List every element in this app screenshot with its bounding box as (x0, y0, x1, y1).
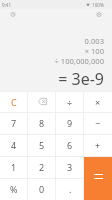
button[interactable]: Equals (84, 157, 112, 200)
staticText: . (69, 183, 72, 195)
button[interactable] (84, 178, 112, 200)
button[interactable]: 4 (0, 134, 28, 156)
button[interactable]: . (56, 178, 84, 200)
staticText: 1 (11, 161, 17, 173)
button[interactable]: Backspace (28, 91, 56, 112)
staticText: 2 (39, 161, 45, 173)
staticText: = 3e-9 (58, 68, 104, 90)
staticText: C (11, 96, 17, 108)
button[interactable]: 8 (28, 112, 56, 134)
staticText: 8 (39, 117, 45, 129)
button[interactable]: 7 (0, 112, 28, 134)
staticText: 6 (67, 139, 73, 151)
staticText: 0.003 (84, 36, 104, 46)
button[interactable]: ÷ (56, 91, 84, 112)
staticText: % (10, 183, 18, 195)
staticText: + (95, 139, 101, 151)
staticText: − (95, 117, 101, 129)
staticText: × 100 (84, 46, 104, 56)
button[interactable]: Settings (91, 7, 106, 22)
button[interactable]: 1 (0, 156, 28, 178)
staticText: 5 (39, 139, 45, 151)
button[interactable]: × (84, 91, 112, 112)
staticText: 100% (92, 2, 104, 8)
button[interactable]: 9 (56, 112, 84, 134)
button[interactable]: − (84, 112, 112, 134)
staticText: ÷ (67, 96, 73, 108)
staticText: × (95, 96, 101, 108)
staticText: 3 (67, 161, 73, 173)
button[interactable]: 0 (28, 178, 56, 200)
button[interactable]: C (0, 91, 28, 112)
staticText: 0 (39, 183, 45, 195)
staticText: 7 (11, 117, 17, 129)
button[interactable]: % (0, 178, 28, 200)
staticText: 4 (11, 139, 17, 151)
button[interactable] (84, 156, 112, 178)
staticText: 9 (67, 117, 73, 129)
button[interactable]: 2 (28, 156, 56, 178)
button[interactable]: 6 (56, 134, 84, 156)
other: Backspace (28, 91, 56, 112)
staticText: ÷ 100,000,000 (54, 56, 104, 66)
button[interactable]: + (84, 134, 112, 156)
button[interactable]: 5 (28, 134, 56, 156)
staticText: 9:41 (2, 2, 12, 8)
button[interactable]: 3 (56, 156, 84, 178)
button[interactable]: History (5, 7, 20, 22)
